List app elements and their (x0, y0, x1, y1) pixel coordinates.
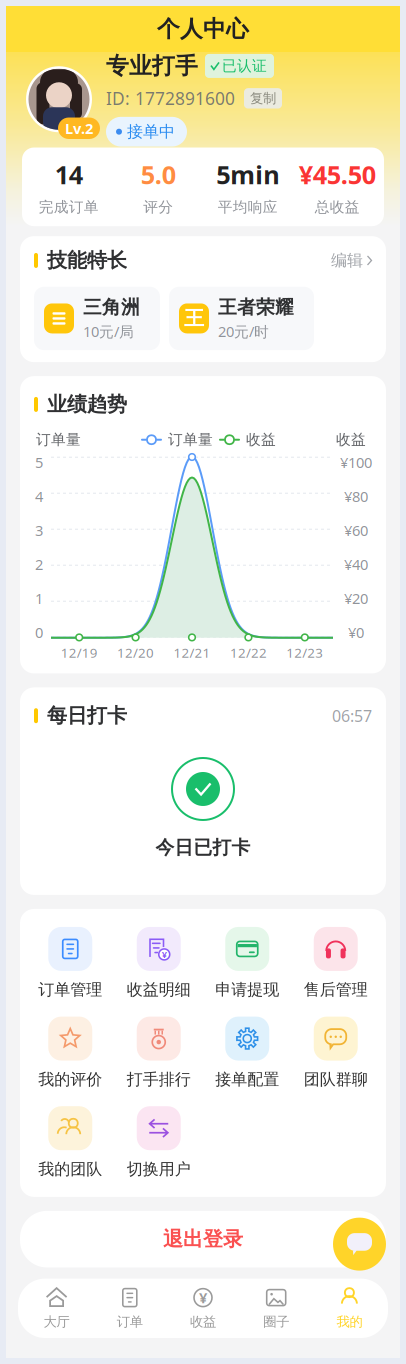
staticText: 12/21 (173, 644, 210, 661)
staticText: 12/20 (117, 644, 154, 661)
button[interactable]: 打手排行 (114, 1017, 203, 1089)
staticText: 每日打卡 (47, 703, 127, 728)
button[interactable]: 售后管理 (291, 927, 380, 1000)
button[interactable]: 退出登录 (20, 1211, 386, 1267)
button[interactable]: 王 (169, 287, 314, 350)
staticText: 三角洲 (83, 296, 140, 319)
staticText: 切换用户 (127, 1159, 191, 1179)
staticText: 已认证 (222, 57, 267, 75)
staticText: 我的评价 (38, 1070, 102, 1089)
staticText: 12/23 (286, 644, 323, 661)
button[interactable]: 在线客服 (333, 1218, 386, 1271)
staticText: ¥ (162, 948, 167, 961)
staticText: 3 (35, 520, 43, 540)
staticText: 20元/时 (218, 322, 269, 341)
staticText: 0 (35, 622, 43, 642)
staticText: 技能特长 (47, 248, 127, 273)
button[interactable]: 三角洲 (34, 287, 160, 350)
button[interactable]: ¥ (166, 1287, 240, 1330)
staticText: 5 (35, 452, 43, 472)
button[interactable]: 我的评价 (26, 1017, 114, 1089)
button[interactable]: 订单管理 (26, 927, 114, 1000)
staticText: ID: 1772891600 (106, 87, 235, 110)
staticText: 售后管理 (304, 980, 368, 1000)
staticText: 编辑 (331, 251, 363, 270)
staticText: 4 (35, 486, 43, 506)
staticText: 5.0 (141, 157, 176, 191)
staticText: 2 (35, 554, 43, 574)
button[interactable]: 编辑 (331, 251, 372, 270)
staticText: ¥40 (344, 554, 368, 574)
button[interactable]: 接单配置 (203, 1017, 291, 1089)
staticText: 平均响应 (218, 198, 278, 216)
staticText: 我的 (336, 1314, 362, 1330)
staticText: 接单中 (127, 122, 175, 142)
button[interactable]: 申请提现 (203, 927, 291, 1000)
staticText: ¥20 (344, 588, 368, 608)
staticText: 14 (55, 157, 83, 191)
button[interactable]: 大厅 (20, 1287, 93, 1330)
button[interactable]: 圈子 (240, 1287, 313, 1330)
staticText: 06:57 (332, 705, 372, 726)
staticText: 王者荣耀 (218, 296, 294, 319)
staticText: 个人中心 (157, 15, 249, 43)
staticText: 评分 (143, 198, 173, 216)
staticText: 收益 (246, 431, 276, 449)
button[interactable]: 订单 (93, 1287, 166, 1330)
staticText: ¥45.50 (299, 157, 376, 191)
staticText: 退出登录 (163, 1227, 243, 1251)
staticText: 订单管理 (38, 980, 102, 1000)
staticText: ¥100 (340, 452, 372, 472)
button[interactable]: 切换用户 (114, 1106, 203, 1179)
staticText: 订单 (117, 1314, 143, 1330)
staticText: 打手排行 (127, 1070, 191, 1089)
button[interactable]: 我的团队 (26, 1106, 114, 1179)
staticText: 订单量 (168, 431, 213, 449)
staticText: 完成订单 (39, 198, 99, 216)
staticText: 今日已打卡 (155, 836, 250, 859)
button[interactable]: ¥ (114, 927, 203, 1000)
button[interactable]: 团队群聊 (291, 1017, 380, 1089)
staticText: 圈子 (263, 1314, 289, 1330)
staticText: 收益 (336, 431, 366, 449)
staticText: 复制 (250, 90, 276, 107)
staticText: Lv.2 (65, 118, 93, 138)
staticText: 专业打手 (106, 52, 198, 80)
staticText: 12/19 (61, 644, 98, 661)
staticText: 订单量 (36, 431, 81, 449)
button[interactable]: 我的 (313, 1287, 386, 1330)
staticText: ¥60 (344, 520, 368, 540)
staticText: 团队群聊 (304, 1070, 368, 1089)
button[interactable]: 复制 (244, 88, 282, 109)
staticText: ¥ (199, 1288, 207, 1307)
staticText: 接单配置 (215, 1070, 279, 1089)
staticText: 10元/局 (83, 322, 134, 341)
staticText: 5min (216, 157, 279, 191)
staticText: 12/22 (230, 644, 267, 661)
staticText: 业绩趋势 (47, 392, 127, 417)
staticText: 总收益 (315, 198, 360, 216)
staticText: 申请提现 (215, 980, 279, 1000)
staticText: 收益明细 (127, 980, 191, 1000)
staticText: ¥0 (348, 622, 364, 642)
button[interactable] (172, 758, 234, 820)
staticText: 1 (35, 588, 43, 608)
staticText: 大厅 (44, 1314, 70, 1330)
staticText: 我的团队 (38, 1159, 102, 1179)
staticText: ¥80 (344, 486, 368, 506)
staticText: 王 (184, 306, 204, 331)
staticText: 收益 (190, 1314, 216, 1330)
